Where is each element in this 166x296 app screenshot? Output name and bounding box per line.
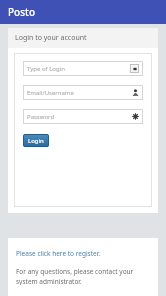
staticText: Posto	[8, 5, 36, 19]
button[interactable]: Please click here to register.	[16, 249, 101, 258]
other: Username	[132, 89, 139, 96]
button[interactable]: Password	[23, 109, 143, 124]
button[interactable]: Email/Username	[23, 85, 143, 100]
staticText: Login to your account	[15, 33, 87, 43]
staticText: Login	[28, 137, 44, 145]
staticText: Please click here to register.	[16, 249, 101, 258]
button[interactable]: Type of Login	[23, 61, 143, 76]
other: Password	[132, 113, 139, 120]
staticText: Email/Username	[27, 89, 132, 97]
staticText: Password	[27, 113, 132, 121]
staticText: Type of Login	[27, 65, 130, 73]
button[interactable]: Login	[23, 134, 49, 147]
staticText: For any questions, please contact your s…	[16, 267, 150, 285]
